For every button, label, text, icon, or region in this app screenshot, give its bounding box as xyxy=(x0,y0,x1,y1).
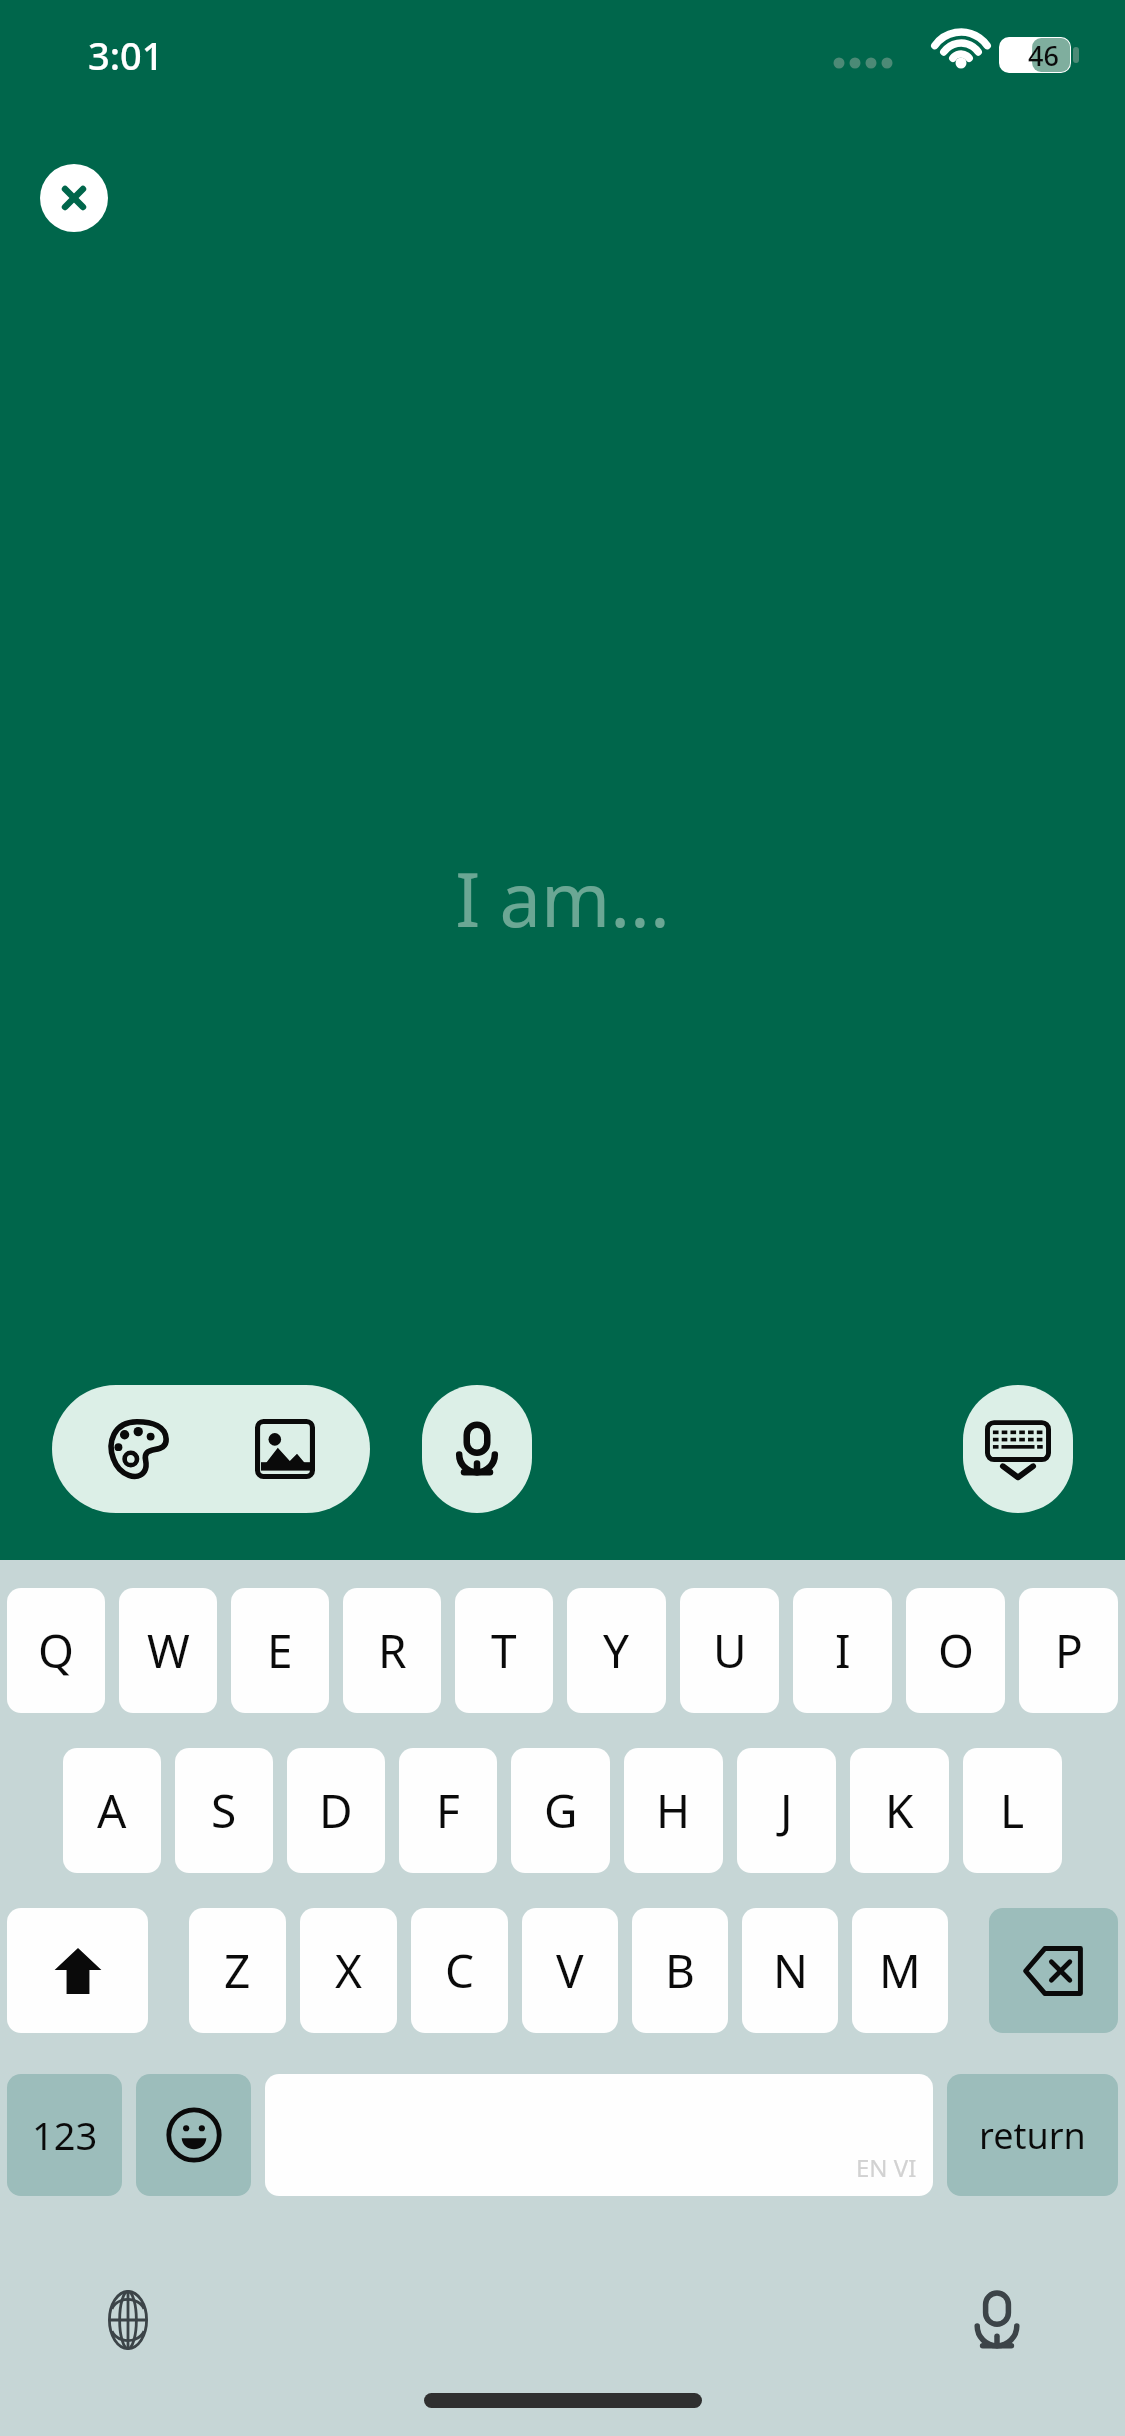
button[interactable]: Y xyxy=(567,1588,666,1713)
staticText: A xyxy=(97,1779,127,1842)
button[interactable]: Voice input xyxy=(422,1385,532,1513)
staticText: G xyxy=(544,1779,578,1842)
staticText: D xyxy=(319,1779,353,1842)
button[interactable]: A xyxy=(63,1748,161,1873)
staticText: I xyxy=(835,1619,851,1682)
button[interactable]: Space xyxy=(265,2074,933,2196)
button[interactable]: F xyxy=(399,1748,497,1873)
button[interactable]: H xyxy=(624,1748,723,1873)
button[interactable]: G xyxy=(511,1748,610,1873)
button[interactable]: M xyxy=(852,1908,948,2033)
staticText: W xyxy=(147,1619,190,1682)
staticText: I am... xyxy=(455,848,670,949)
button[interactable]: Close xyxy=(40,164,108,232)
staticText: J xyxy=(780,1779,793,1842)
button[interactable]: D xyxy=(287,1748,385,1873)
button[interactable]: Change language xyxy=(80,2272,176,2368)
staticText: EN VI xyxy=(856,2151,917,2184)
button[interactable]: X xyxy=(300,1908,397,2033)
button[interactable]: Shift xyxy=(7,1908,148,2033)
button[interactable]: B xyxy=(632,1908,728,2033)
staticText: O xyxy=(938,1619,974,1682)
staticText: U xyxy=(713,1619,747,1682)
staticText: V xyxy=(556,1939,584,2002)
button[interactable]: P xyxy=(1019,1588,1118,1713)
staticText: Q xyxy=(38,1619,74,1682)
staticText: 3:01 xyxy=(88,29,164,81)
button[interactable]: Add image xyxy=(223,1387,347,1511)
staticText: S xyxy=(211,1779,237,1842)
button[interactable]: Q xyxy=(7,1588,105,1713)
button[interactable]: U xyxy=(680,1588,779,1713)
button[interactable]: return xyxy=(947,2074,1118,2196)
staticText: R xyxy=(378,1619,407,1682)
button[interactable]: T xyxy=(455,1588,553,1713)
button[interactable]: V xyxy=(522,1908,618,2033)
staticText: L xyxy=(1000,1779,1025,1842)
button[interactable]: W xyxy=(119,1588,217,1713)
staticText: X xyxy=(335,1939,362,2002)
button[interactable]: K xyxy=(850,1748,949,1873)
staticText: C xyxy=(445,1939,475,2002)
button[interactable]: J xyxy=(737,1748,836,1873)
staticText: Z xyxy=(224,1939,251,2002)
staticText: N xyxy=(773,1939,808,2002)
button[interactable]: Z xyxy=(189,1908,286,2033)
staticText: F xyxy=(436,1779,460,1842)
staticText: E xyxy=(267,1619,293,1682)
button[interactable]: Emoji xyxy=(136,2074,251,2196)
staticText: H xyxy=(656,1779,691,1842)
button[interactable]: 123 xyxy=(7,2074,122,2196)
staticText: Y xyxy=(603,1619,630,1682)
button[interactable]: C xyxy=(411,1908,508,2033)
button[interactable]: E xyxy=(231,1588,329,1713)
button[interactable]: R xyxy=(343,1588,441,1713)
button[interactable]: O xyxy=(906,1588,1005,1713)
staticText: P xyxy=(1055,1619,1083,1682)
button[interactable]: Hide keyboard xyxy=(963,1385,1073,1513)
button[interactable]: Dictate xyxy=(949,2272,1045,2368)
button[interactable]: S xyxy=(175,1748,273,1873)
button[interactable]: N xyxy=(742,1908,838,2033)
button[interactable]: L xyxy=(963,1748,1062,1873)
button[interactable]: I xyxy=(793,1588,892,1713)
staticText: return xyxy=(979,2111,1086,2160)
staticText: 123 xyxy=(32,2109,98,2161)
button[interactable]: Theme xyxy=(75,1387,199,1511)
staticText: K xyxy=(885,1779,914,1842)
staticText: M xyxy=(879,1939,921,2002)
staticText: T xyxy=(491,1619,517,1682)
staticText: B xyxy=(665,1939,695,2002)
button[interactable]: Backspace xyxy=(989,1908,1118,2033)
staticText: 46 xyxy=(1028,37,1059,74)
